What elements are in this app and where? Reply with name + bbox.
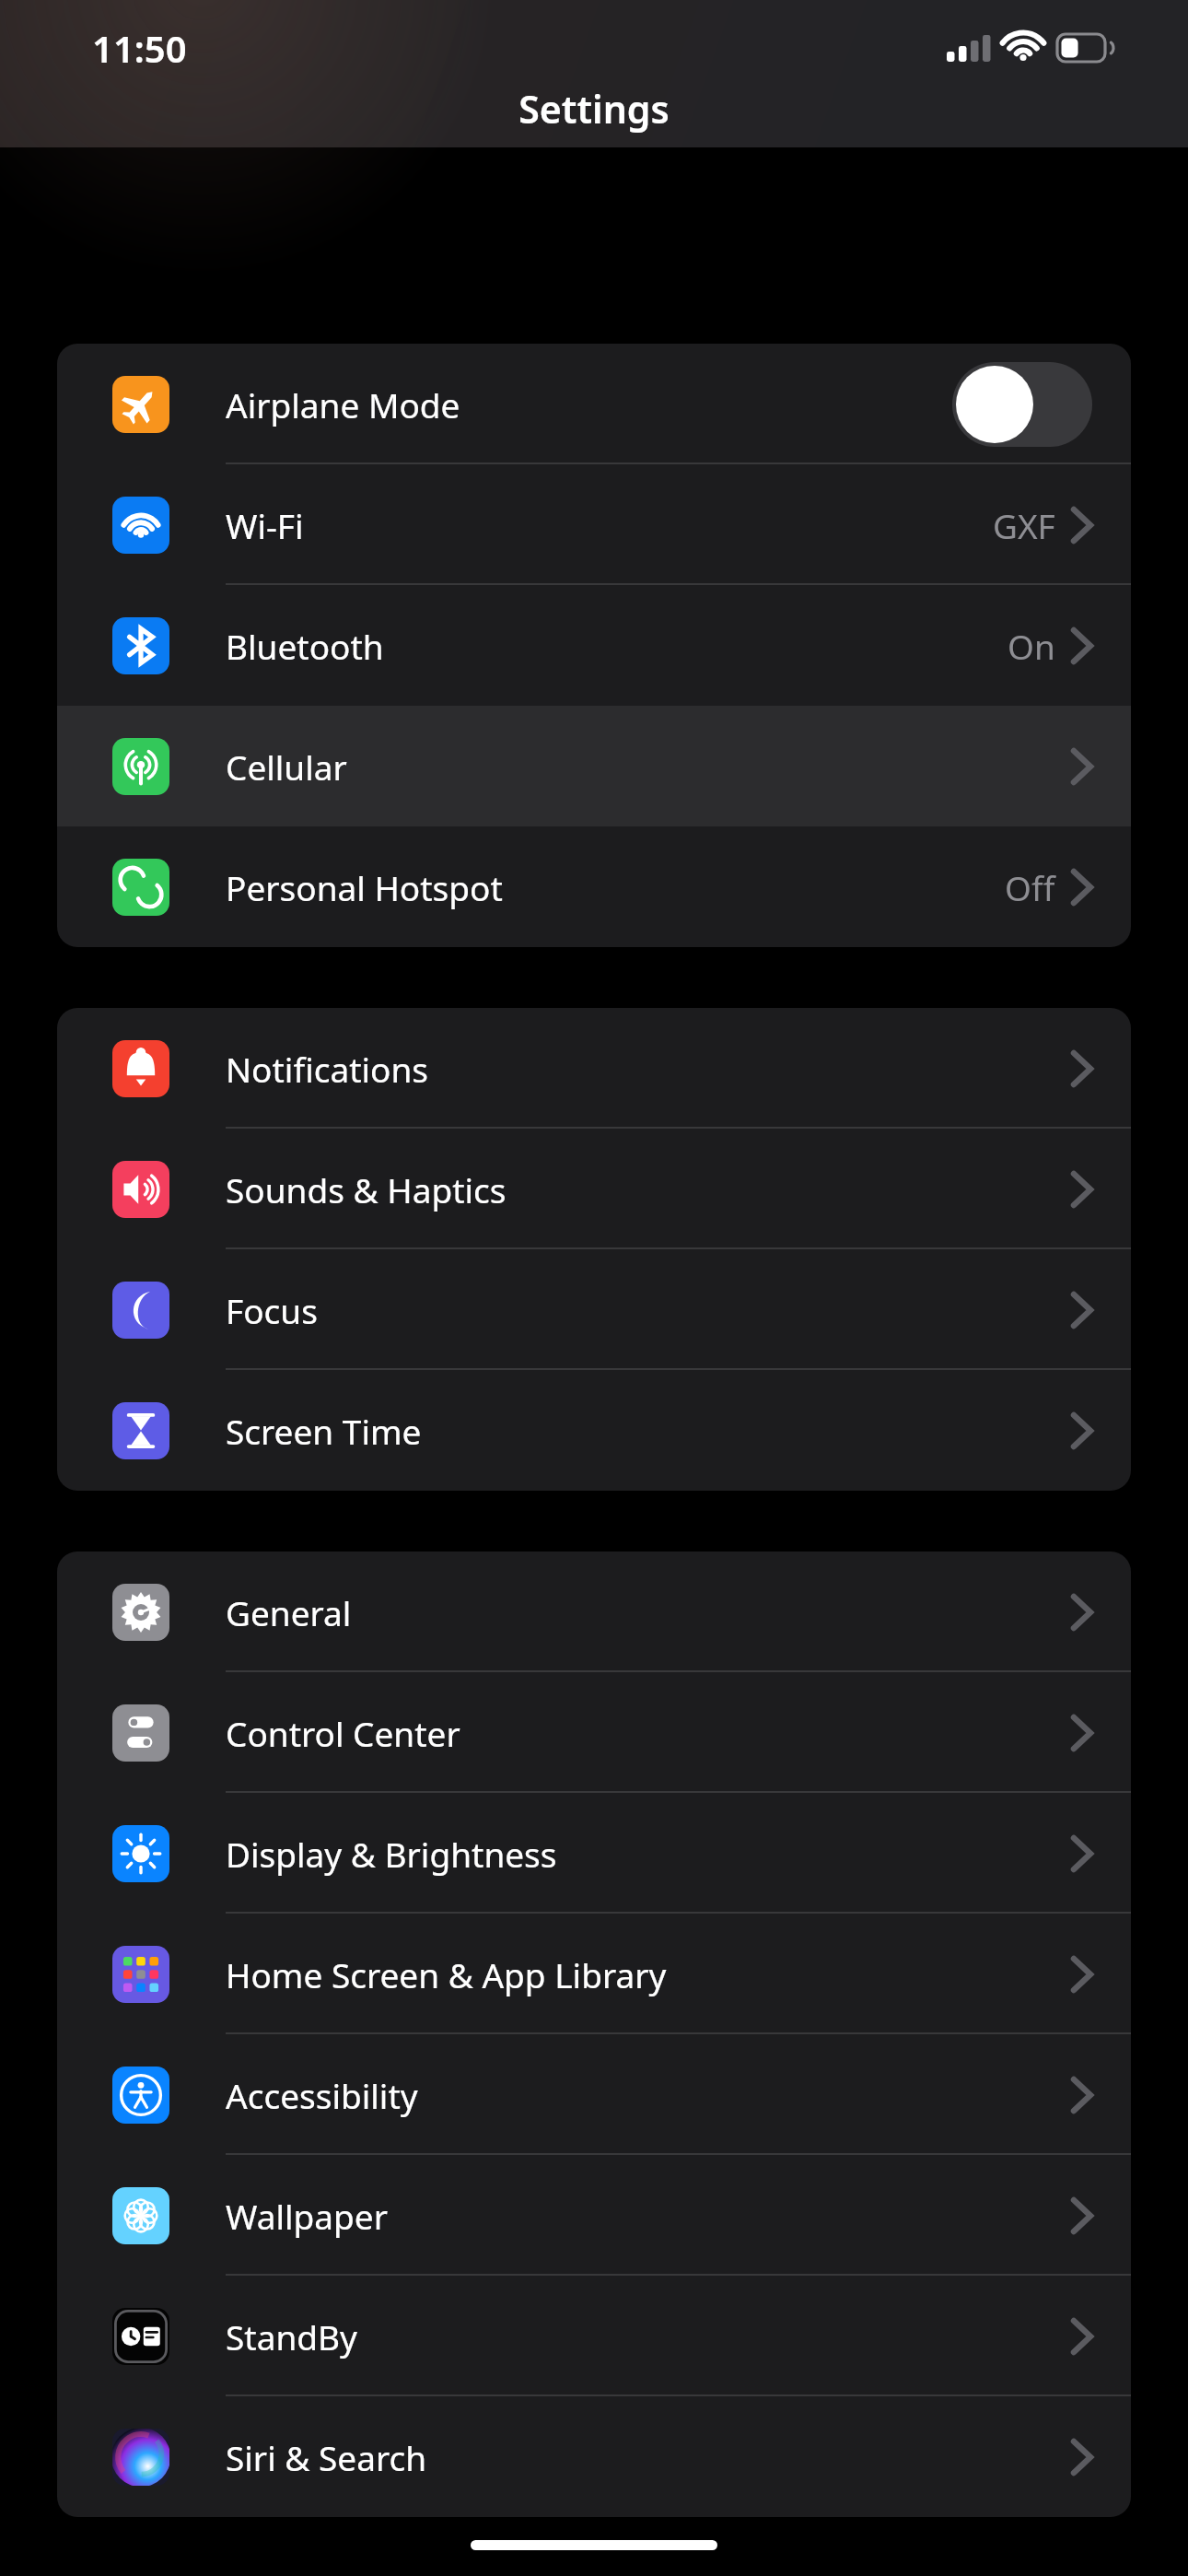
button[interactable]: Display & Brightness	[57, 1793, 1131, 1914]
button[interactable]: Cellular	[57, 706, 1131, 826]
staticText: Siri & Search	[226, 2434, 1072, 2480]
staticText: StandBy	[226, 2313, 1072, 2359]
staticText: GXF	[993, 502, 1055, 548]
button[interactable]: Airplane Mode toggle	[952, 362, 1092, 447]
staticText: Wi-Fi	[226, 502, 993, 548]
staticText: Control Center	[226, 1710, 1072, 1756]
button[interactable]: Control Center	[57, 1672, 1131, 1793]
button[interactable]: StandBy	[57, 2276, 1131, 2396]
staticText: Accessibility	[226, 2072, 1072, 2118]
button[interactable]: General	[57, 1551, 1131, 1672]
staticText: Screen Time	[226, 1408, 1072, 1454]
staticText: Sounds & Haptics	[226, 1166, 1072, 1212]
staticText: Airplane Mode	[226, 381, 952, 427]
button[interactable]: Bluetooth	[57, 585, 1131, 706]
button[interactable]: Wallpaper	[57, 2155, 1131, 2276]
staticText: Display & Brightness	[226, 1831, 1072, 1877]
button[interactable]: Home Screen & App Library	[57, 1914, 1131, 2034]
staticText: On	[1007, 623, 1055, 669]
button[interactable]: Focus	[57, 1249, 1131, 1370]
staticText: 11:50	[92, 23, 187, 73]
button[interactable]: Sounds & Haptics	[57, 1129, 1131, 1249]
button[interactable]: Accessibility	[57, 2034, 1131, 2155]
button[interactable]: Personal Hotspot	[57, 826, 1131, 947]
button[interactable]: Screen Time	[57, 1370, 1131, 1491]
button[interactable]: Wi-Fi	[57, 464, 1131, 585]
button[interactable]: Siri & Search	[57, 2396, 1131, 2517]
staticText: Focus	[226, 1287, 1072, 1333]
staticText: Personal Hotspot	[226, 864, 1005, 910]
button[interactable]: Airplane Mode	[57, 344, 1131, 464]
staticText: Notifications	[226, 1046, 1072, 1092]
staticText: Cellular	[226, 744, 1072, 790]
staticText: Settings	[518, 83, 670, 135]
button[interactable]: Notifications	[57, 1008, 1131, 1129]
staticText: General	[226, 1589, 1072, 1635]
staticText: Wallpaper	[226, 2193, 1072, 2239]
staticText: Off	[1005, 864, 1055, 910]
staticText: Bluetooth	[226, 623, 1007, 669]
staticText: Home Screen & App Library	[226, 1951, 1072, 1997]
